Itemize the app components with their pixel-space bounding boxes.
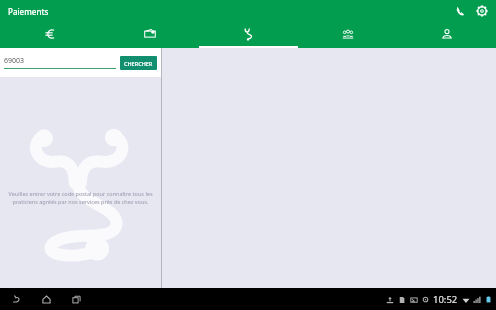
button[interactable]: Settings [471, 0, 493, 22]
button[interactable]: Profile [397, 22, 496, 48]
staticText: 10:52 [433, 293, 458, 306]
staticText: CHERCHER [124, 60, 153, 67]
button[interactable]: Group [298, 22, 397, 48]
button[interactable]: Payments [0, 22, 100, 48]
button[interactable]: Card [100, 22, 199, 48]
button[interactable]: CHERCHER [120, 56, 157, 70]
button[interactable]: Back [6, 289, 26, 309]
button[interactable]: Call [449, 0, 471, 22]
button[interactable]: Recent apps [66, 289, 86, 309]
button[interactable]: Home [36, 289, 56, 309]
staticText: Veuillez entrer votre code postal pour c… [8, 190, 153, 206]
button[interactable]: Practitioners [199, 22, 298, 48]
staticText: 69003 [4, 56, 25, 66]
staticText: Paiements [8, 6, 49, 17]
